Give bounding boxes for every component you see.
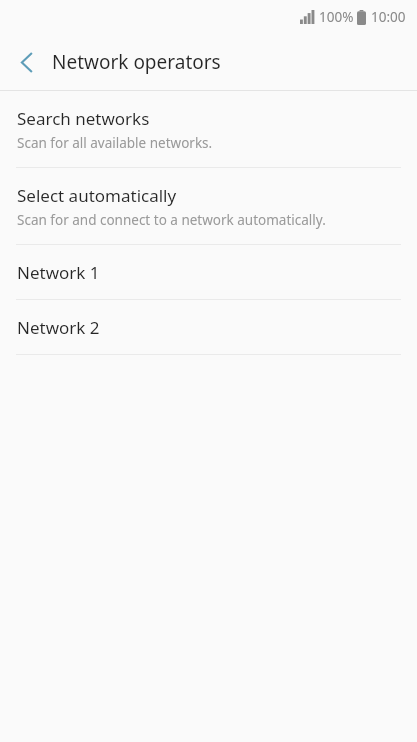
staticText: Select automatically [17, 184, 177, 207]
staticText: Search networks [17, 107, 150, 130]
staticText: 10:00 [371, 8, 406, 26]
staticText: 100% [319, 8, 354, 26]
staticText: Network 1 [17, 261, 100, 284]
button[interactable]: Search networks [0, 91, 417, 167]
staticText: Network 2 [17, 316, 100, 339]
staticText: Network operators [52, 49, 221, 75]
staticText: Scan for and connect to a network automa… [17, 211, 326, 229]
staticText: Scan for all available networks. [17, 134, 213, 152]
button[interactable]: Back [0, 36, 52, 88]
button[interactable]: Network 1 [0, 245, 417, 299]
button[interactable]: Select automatically [0, 168, 417, 244]
button[interactable]: Network 2 [0, 300, 417, 354]
